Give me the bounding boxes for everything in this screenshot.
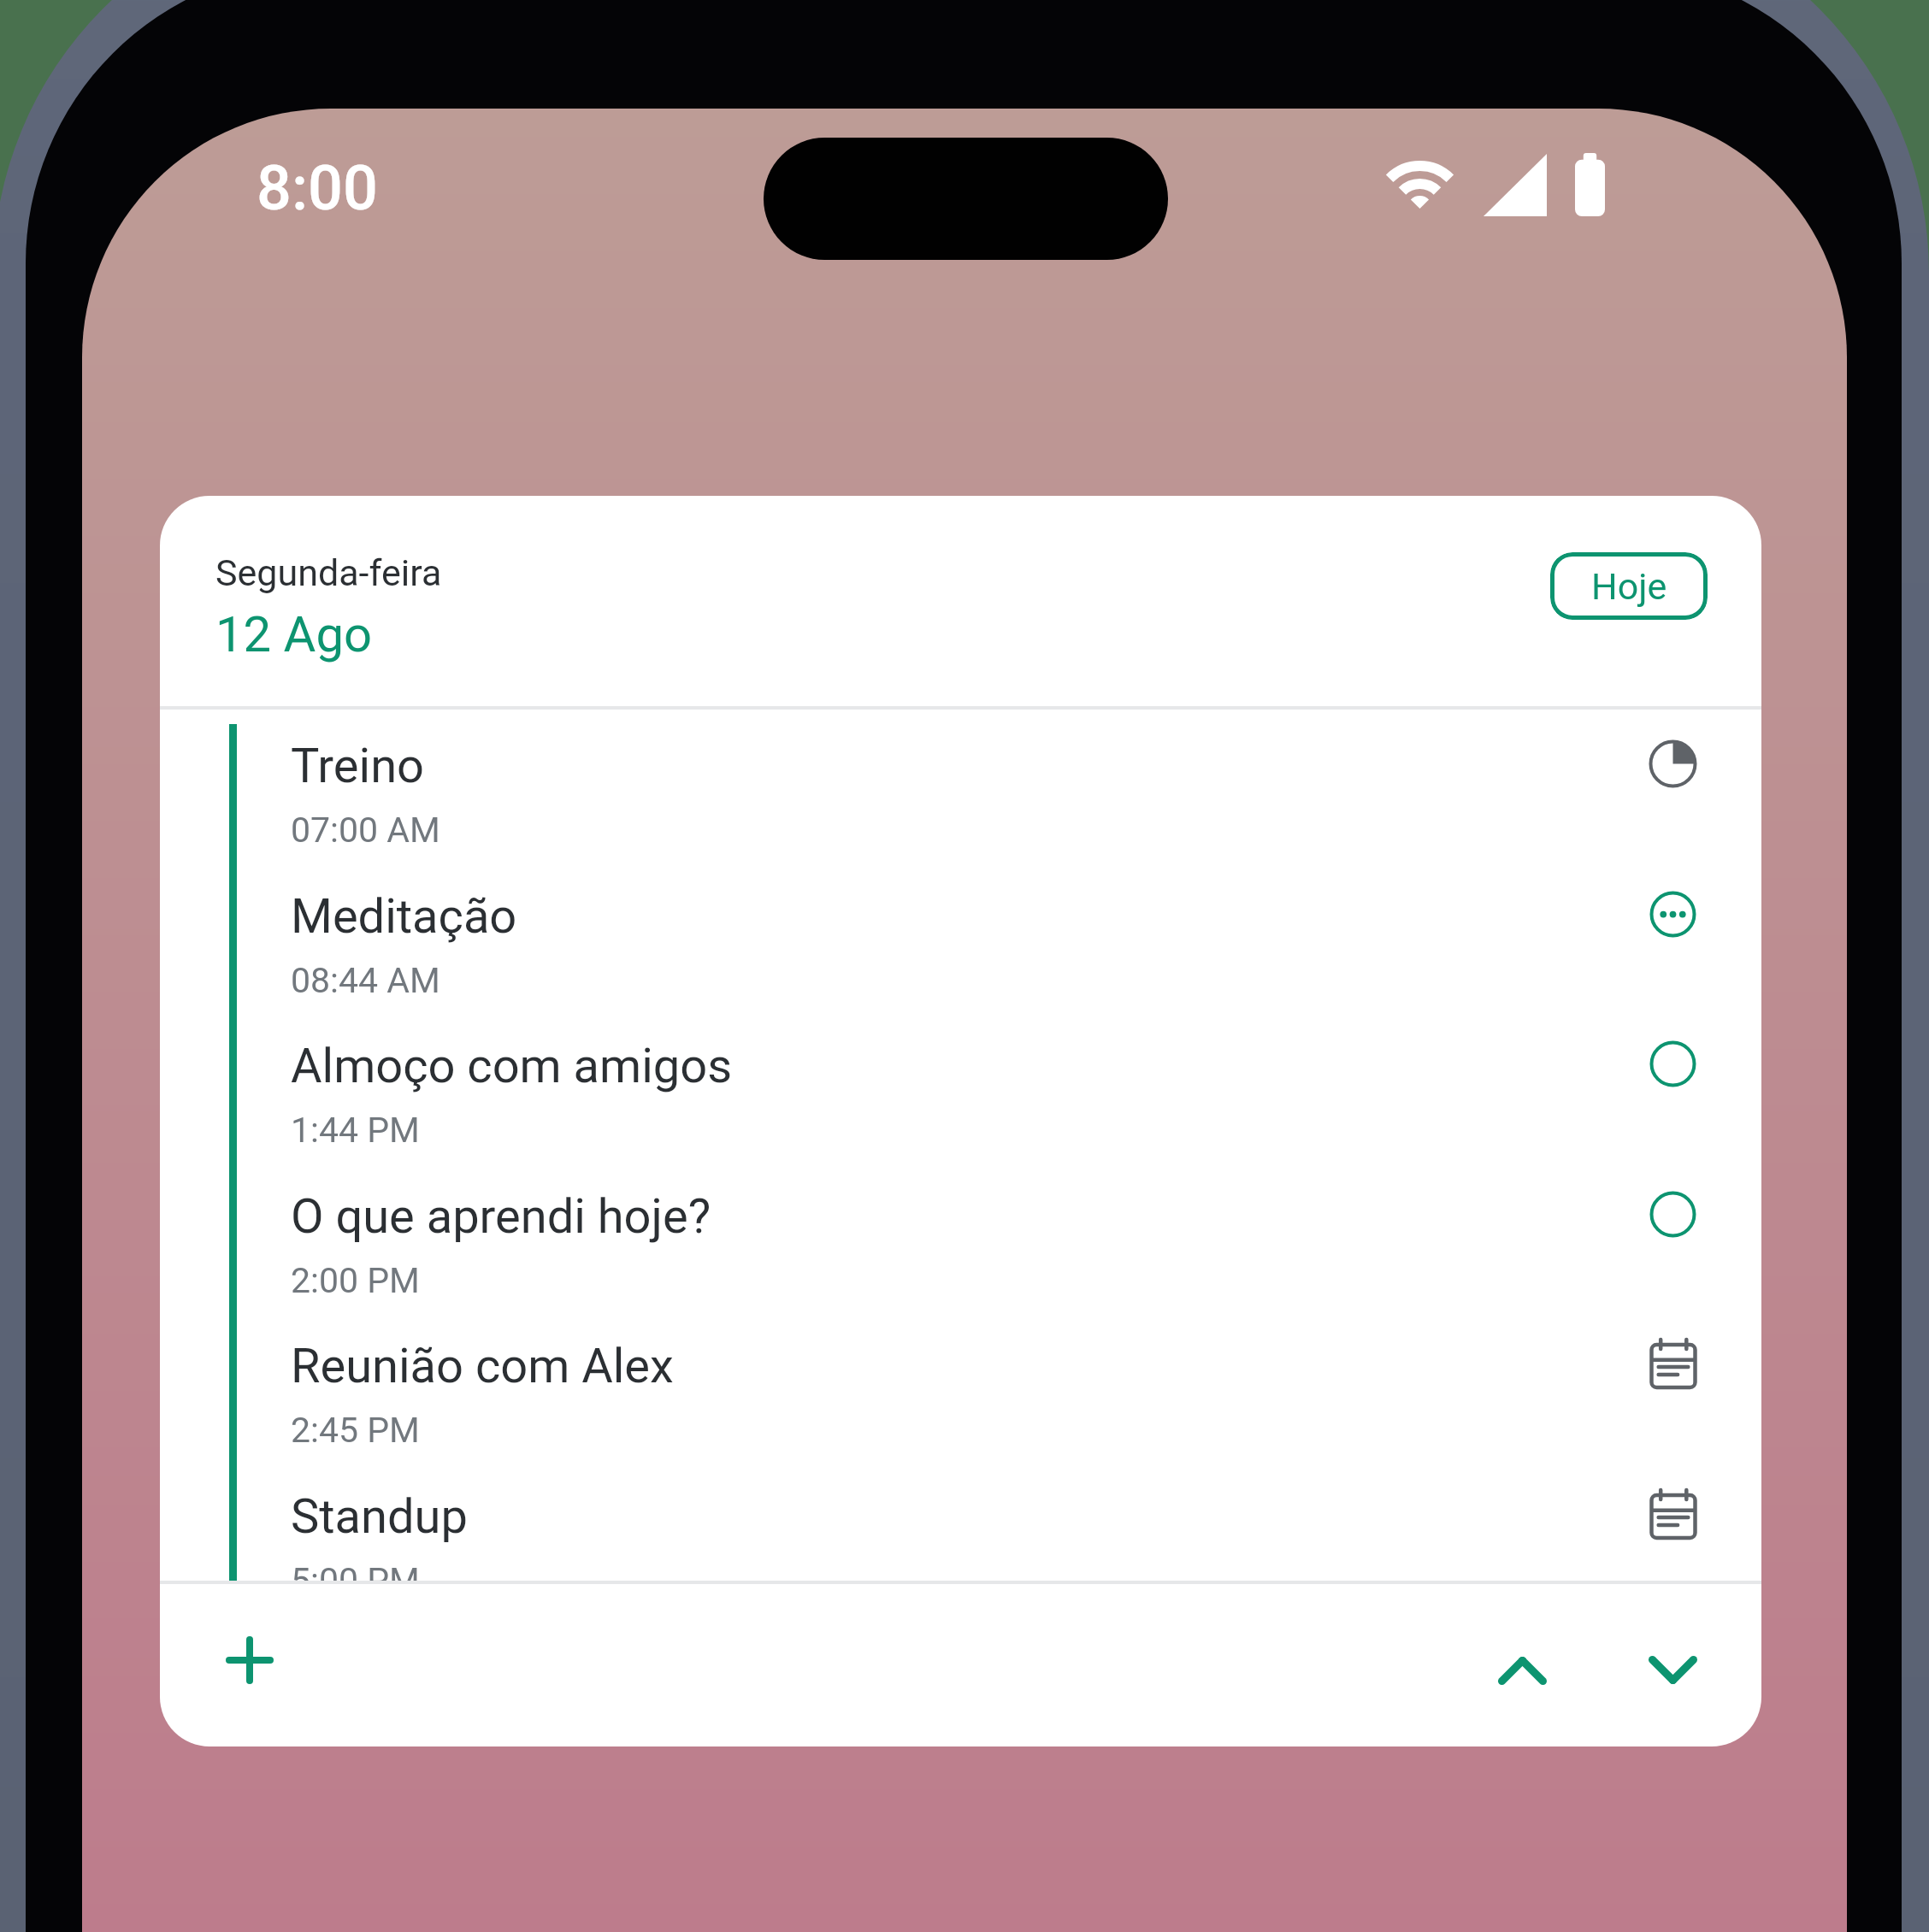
button[interactable]: Reunião com Alex	[160, 1310, 1761, 1460]
button[interactable]: Próximo	[1630, 1627, 1715, 1712]
staticText: 8:00	[257, 152, 378, 224]
staticText: Almoço com amigos	[291, 1038, 733, 1094]
button[interactable]: Treino	[160, 710, 1761, 860]
staticText: 5:00 PM	[291, 1560, 420, 1581]
button[interactable]: Adicionar	[211, 1622, 288, 1699]
staticText: Treino	[291, 738, 424, 794]
button[interactable]: Hoje	[1550, 552, 1708, 620]
button[interactable]: Anterior	[1479, 1628, 1565, 1713]
staticText: Meditação	[291, 888, 517, 945]
button[interactable]: Standup	[160, 1460, 1761, 1581]
button[interactable]: O que aprendi hoje?	[160, 1160, 1761, 1311]
staticText: 08:44 AM	[291, 960, 440, 1001]
staticText: O que aprendi hoje?	[291, 1188, 711, 1245]
staticText: Hoje	[1591, 565, 1667, 608]
staticText: 1:44 PM	[291, 1110, 420, 1151]
staticText: 2:00 PM	[291, 1260, 420, 1301]
button[interactable]: Almoço com amigos	[160, 1010, 1761, 1160]
staticText: 07:00 AM	[291, 810, 440, 851]
staticText: Segunda-feira	[215, 551, 442, 594]
staticText: 12 Ago	[215, 605, 373, 663]
staticText: 2:45 PM	[291, 1410, 420, 1451]
staticText: Reunião com Alex	[291, 1338, 674, 1394]
button[interactable]: Meditação	[160, 860, 1761, 1010]
staticText: Standup	[291, 1488, 468, 1545]
